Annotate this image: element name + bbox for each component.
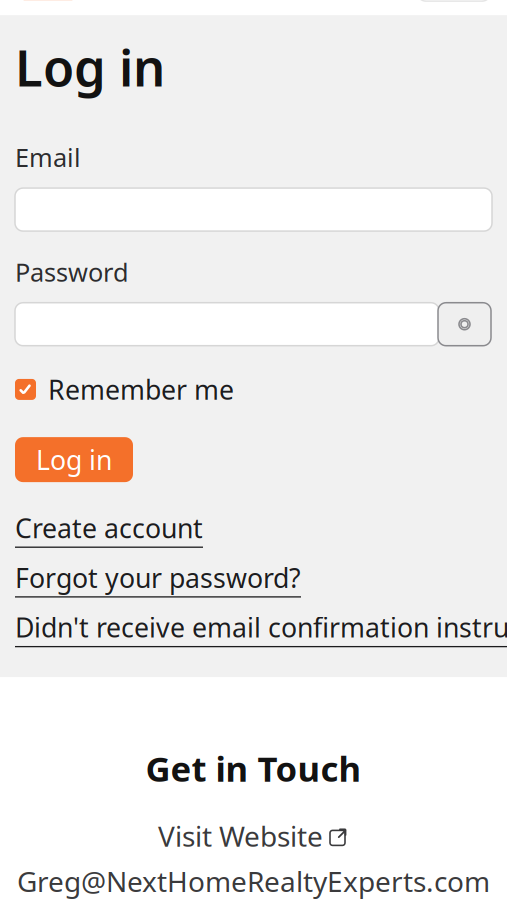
- staticText: Log in: [15, 33, 165, 100]
- staticText: Password: [15, 255, 129, 289]
- button[interactable]: Show password: [438, 303, 491, 346]
- staticText: Email: [15, 140, 81, 174]
- button[interactable]: Create account: [15, 510, 203, 548]
- button[interactable]: NextHome home: [16, 0, 80, 4]
- button[interactable]: Didn't receive email confirmation instru…: [15, 610, 507, 647]
- staticText: N: [33, 0, 63, 4]
- button[interactable]: Remember me: [15, 368, 492, 411]
- staticText: Visit Website: [158, 817, 323, 854]
- button[interactable]: Menu: [417, 0, 491, 1]
- staticText: Greg@NextHomeRealtyExperts.com: [17, 862, 490, 900]
- button[interactable]: Greg@NextHomeRealtyExperts.com: [17, 862, 490, 900]
- button[interactable]: Log in: [15, 437, 133, 482]
- staticText: Remember me: [48, 372, 234, 407]
- staticText: Create account: [15, 510, 203, 545]
- staticText: Forgot your password?: [15, 560, 301, 595]
- button[interactable]: Forgot your password?: [15, 560, 301, 597]
- staticText: Didn't receive email confirmation instru…: [15, 610, 507, 645]
- staticText: Log in: [36, 442, 112, 477]
- staticText: Get in Touch: [145, 745, 361, 791]
- button[interactable]: Visit Website: [158, 817, 349, 854]
